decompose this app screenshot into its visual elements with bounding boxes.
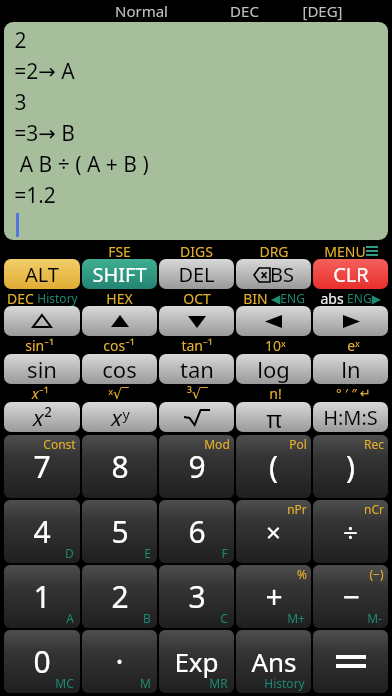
staticText: ˣ√‾ xyxy=(108,384,129,402)
staticText: nCr xyxy=(364,501,384,517)
button[interactable]: H:M:S xyxy=(313,402,388,432)
button[interactable]: π xyxy=(236,402,311,432)
staticText: 10ˣ xyxy=(265,336,286,354)
button[interactable]: ln xyxy=(313,354,388,384)
staticText: 3 xyxy=(14,88,27,117)
button[interactable]: 7 xyxy=(4,435,80,498)
staticText: · xyxy=(115,641,124,682)
staticText: Normal xyxy=(115,1,168,21)
button[interactable]: 8 xyxy=(82,435,157,498)
staticText: 4 xyxy=(33,511,51,552)
button[interactable]: Exp xyxy=(159,630,234,693)
staticText: 𝑥² xyxy=(32,402,52,432)
button[interactable]: ALT xyxy=(4,259,80,289)
staticText: DEC xyxy=(230,1,259,21)
staticText: sin⁻¹ xyxy=(25,336,54,354)
staticText: 9 xyxy=(188,446,206,487)
staticText: cos xyxy=(102,354,137,384)
staticText: MR xyxy=(209,675,228,691)
button[interactable]: 4 xyxy=(4,500,80,563)
staticText: M xyxy=(140,675,151,691)
button[interactable]: Equals xyxy=(313,630,388,693)
staticText: nPr xyxy=(287,501,307,517)
staticText: MC xyxy=(55,675,74,691)
button[interactable]: CLR xyxy=(313,259,388,289)
button[interactable]: 𝑥ʸ xyxy=(82,402,157,432)
staticText: HEX xyxy=(106,289,133,306)
button[interactable]: 3 xyxy=(159,565,234,628)
staticText: (−) xyxy=(369,566,384,582)
staticText: 3 xyxy=(188,576,206,617)
staticText: + xyxy=(265,576,283,617)
staticText: ( xyxy=(269,446,278,487)
button[interactable]: Up outline xyxy=(4,306,80,336)
staticText: ln xyxy=(341,354,361,384)
button[interactable]: × xyxy=(236,500,311,563)
button[interactable]: Square root xyxy=(159,402,234,432)
staticText: × xyxy=(266,514,281,549)
staticText: C xyxy=(220,610,228,626)
staticText: 6 xyxy=(188,511,206,552)
button[interactable]: sin xyxy=(4,354,80,384)
staticText: =1.2 xyxy=(14,181,56,210)
button[interactable]: BS xyxy=(236,259,311,289)
staticText: Pol xyxy=(289,436,307,452)
button[interactable]: 5 xyxy=(82,500,157,563)
staticText: F xyxy=(221,545,228,561)
button[interactable]: ( xyxy=(236,435,311,498)
staticText: Rec xyxy=(364,436,384,452)
staticText: E xyxy=(144,545,151,561)
button[interactable]: Left xyxy=(236,306,311,336)
staticText: 2 xyxy=(14,26,27,55)
staticText: 𝑥⁻¹ xyxy=(31,384,49,402)
staticText: Const xyxy=(43,436,76,452)
staticText: 2 xyxy=(111,576,129,617)
button[interactable]: SHIFT xyxy=(82,259,157,289)
button[interactable]: 6 xyxy=(159,500,234,563)
button[interactable]: tan xyxy=(159,354,234,384)
staticText: M- xyxy=(367,610,382,626)
staticText: OCT xyxy=(183,289,211,306)
staticText: log xyxy=(257,354,290,384)
button[interactable]: 0 xyxy=(4,630,80,693)
button[interactable]: Up xyxy=(82,306,157,336)
staticText: =2→ A xyxy=(14,57,75,86)
staticText: A xyxy=(66,610,74,626)
staticText: SHIFT xyxy=(92,261,147,288)
button[interactable]: cos xyxy=(82,354,157,384)
button[interactable]: · xyxy=(82,630,157,693)
staticText: D xyxy=(65,545,74,561)
staticText: 1 xyxy=(33,576,51,617)
button[interactable]: 𝑥² xyxy=(4,402,80,432)
button[interactable]: + xyxy=(236,565,311,628)
staticText: FSE xyxy=(108,242,131,259)
staticText: π xyxy=(266,402,282,432)
staticText: Mod xyxy=(204,436,230,452)
staticText: abs xyxy=(320,289,344,306)
staticText: DIGS xyxy=(180,242,213,259)
staticText: DEL xyxy=(178,261,215,288)
button[interactable]: 9 xyxy=(159,435,234,498)
staticText: ° ′ ″ ↵ xyxy=(336,384,371,402)
button[interactable]: Down xyxy=(159,306,234,336)
button[interactable]: 1 xyxy=(4,565,80,628)
button[interactable]: DEL xyxy=(159,259,234,289)
staticText: Exp xyxy=(174,644,219,679)
button[interactable]: Right xyxy=(313,306,388,336)
staticText: cos⁻¹ xyxy=(103,336,135,354)
button[interactable]: Ans xyxy=(236,630,311,693)
staticText: sin xyxy=(27,354,57,384)
button[interactable]: − xyxy=(313,565,388,628)
button[interactable]: log xyxy=(236,354,311,384)
staticText: ENG▶ xyxy=(347,290,381,306)
staticText: ) xyxy=(346,446,355,487)
staticText: BIN xyxy=(243,289,268,306)
staticText: A B ÷ ( A + B ) xyxy=(14,150,149,179)
button[interactable]: 2 xyxy=(82,565,157,628)
staticText: History xyxy=(264,675,305,691)
staticText: 8 xyxy=(111,446,129,487)
staticText: MENU xyxy=(324,242,366,259)
button[interactable]: ÷ xyxy=(313,500,388,563)
button[interactable]: ) xyxy=(313,435,388,498)
staticText: CLR xyxy=(333,261,369,288)
